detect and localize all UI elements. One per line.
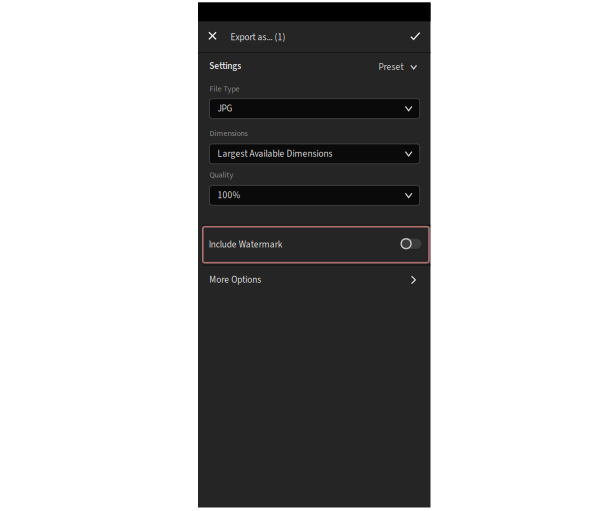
staticText: Quality — [209, 169, 233, 181]
staticText: Preset — [378, 60, 403, 74]
staticText: Dimensions — [209, 128, 247, 139]
button[interactable]: 100% — [209, 185, 420, 205]
button[interactable]: JPG — [209, 99, 420, 119]
button[interactable]: Include Watermark — [203, 227, 429, 263]
staticText: Include Watermark — [209, 238, 283, 251]
button[interactable]: Confirm export — [403, 24, 427, 48]
staticText: Settings — [209, 59, 241, 73]
button[interactable]: More Options — [198, 266, 430, 294]
staticText: File Type — [209, 83, 239, 95]
button[interactable]: Close — [200, 24, 224, 48]
button[interactable]: Preset — [376, 55, 419, 79]
staticText: Largest Available Dimensions — [218, 147, 333, 160]
button[interactable]: Largest Available Dimensions — [209, 144, 420, 164]
staticText: More Options — [209, 273, 261, 287]
staticText: 100% — [218, 189, 241, 202]
staticText: Export as... (1) — [230, 31, 285, 44]
staticText: JPG — [218, 102, 233, 115]
